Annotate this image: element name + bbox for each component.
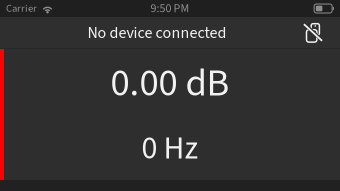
staticText: Carrier bbox=[6, 1, 37, 16]
staticText: 0.00 dB bbox=[110, 56, 229, 111]
button[interactable]: Device disconnected bbox=[294, 17, 332, 48]
staticText: 0 Hz bbox=[141, 126, 198, 171]
staticText: No device connected bbox=[87, 22, 226, 44]
staticText: 9:50 PM bbox=[150, 0, 189, 17]
